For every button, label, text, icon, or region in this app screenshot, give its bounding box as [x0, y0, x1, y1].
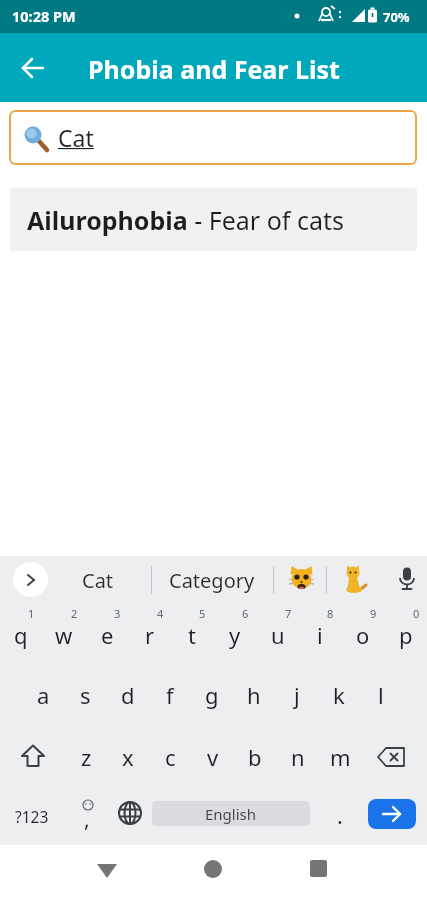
staticText: 9: [370, 606, 377, 621]
staticText: n: [291, 742, 305, 772]
button[interactable]: n: [277, 734, 319, 780]
staticText: 7: [285, 606, 292, 621]
button[interactable]: w: [43, 612, 85, 658]
staticText: b: [248, 742, 262, 772]
staticText: 2: [71, 606, 78, 621]
staticText: t: [188, 620, 196, 650]
staticText: Cat: [58, 122, 94, 153]
button[interactable]: i: [299, 612, 341, 658]
staticText: h: [247, 680, 261, 710]
button[interactable]: x: [107, 734, 149, 780]
button[interactable]: [13, 562, 48, 597]
button[interactable]: k: [318, 672, 360, 718]
button[interactable]: Cat: [60, 560, 135, 600]
button[interactable]: y: [214, 612, 256, 658]
staticText: Ailurophobia - Fear of cats: [27, 203, 344, 237]
staticText: w: [55, 620, 73, 650]
button[interactable]: p: [385, 612, 427, 658]
staticText: q: [14, 620, 28, 650]
button[interactable]: [117, 800, 143, 826]
button[interactable]: m: [319, 734, 361, 780]
staticText: 4: [157, 606, 164, 621]
button[interactable]: [376, 745, 408, 769]
staticText: o: [356, 620, 370, 650]
staticText: f: [166, 680, 174, 710]
staticText: k: [333, 680, 345, 710]
staticText: c: [165, 742, 176, 772]
button[interactable]: [78, 798, 98, 812]
staticText: e: [101, 620, 114, 650]
staticText: d: [121, 680, 135, 710]
staticText: 0: [413, 606, 420, 621]
staticText: r: [145, 620, 155, 650]
staticText: g: [205, 680, 219, 710]
button[interactable]: Category: [157, 560, 267, 600]
button[interactable]: [204, 860, 222, 878]
button[interactable]: Ailurophobia - Fear of cats: [10, 188, 417, 251]
button[interactable]: [310, 860, 327, 877]
staticText: s: [80, 680, 91, 710]
staticText: y: [229, 620, 241, 650]
button[interactable]: t: [171, 612, 213, 658]
button[interactable]: j: [276, 672, 318, 718]
staticText: 1: [28, 606, 35, 621]
button[interactable]: s: [64, 672, 106, 718]
button[interactable]: u: [257, 612, 299, 658]
staticText: English: [205, 804, 257, 824]
staticText: 8: [327, 606, 334, 621]
staticText: j: [294, 680, 300, 710]
button[interactable]: Cat: [9, 110, 417, 165]
button[interactable]: ?123: [8, 796, 56, 836]
staticText: Category: [169, 567, 255, 594]
button[interactable]: o: [342, 612, 384, 658]
button[interactable]: z: [65, 734, 107, 780]
button[interactable]: h: [233, 672, 275, 718]
staticText: 6: [242, 606, 249, 621]
staticText: ,: [84, 805, 90, 834]
staticText: z: [81, 742, 92, 772]
button[interactable]: [19, 744, 47, 770]
staticText: ?123: [15, 806, 49, 827]
staticText: Cat: [82, 567, 114, 594]
staticText: 10:28 PM: [12, 6, 76, 26]
staticText: Phobia and Fear List: [88, 52, 340, 86]
button[interactable]: e: [86, 612, 128, 658]
button[interactable]: v: [192, 734, 234, 780]
button[interactable]: l: [360, 672, 402, 718]
button[interactable]: q: [0, 612, 42, 658]
button[interactable]: a: [22, 672, 64, 718]
staticText: a: [37, 680, 50, 710]
staticText: i: [317, 620, 323, 650]
staticText: x: [122, 742, 134, 772]
button[interactable]: [368, 799, 416, 829]
button[interactable]: [16, 51, 50, 85]
button[interactable]: f: [149, 672, 191, 718]
staticText: .: [337, 800, 343, 830]
button[interactable]: [289, 565, 314, 591]
button[interactable]: [396, 567, 418, 593]
button[interactable]: English: [152, 801, 310, 826]
staticText: 5: [199, 606, 206, 621]
staticText: p: [399, 620, 413, 650]
button[interactable]: r: [129, 612, 171, 658]
button[interactable]: d: [107, 672, 149, 718]
button[interactable]: b: [234, 734, 276, 780]
staticText: 70%: [383, 8, 410, 26]
staticText: v: [207, 742, 219, 772]
staticText: 3: [114, 606, 121, 621]
staticText: l: [378, 680, 384, 710]
staticText: u: [271, 620, 285, 650]
button[interactable]: c: [149, 734, 191, 780]
staticText: m: [330, 742, 351, 772]
button[interactable]: g: [191, 672, 233, 718]
button[interactable]: [96, 862, 118, 880]
button[interactable]: [342, 565, 367, 594]
